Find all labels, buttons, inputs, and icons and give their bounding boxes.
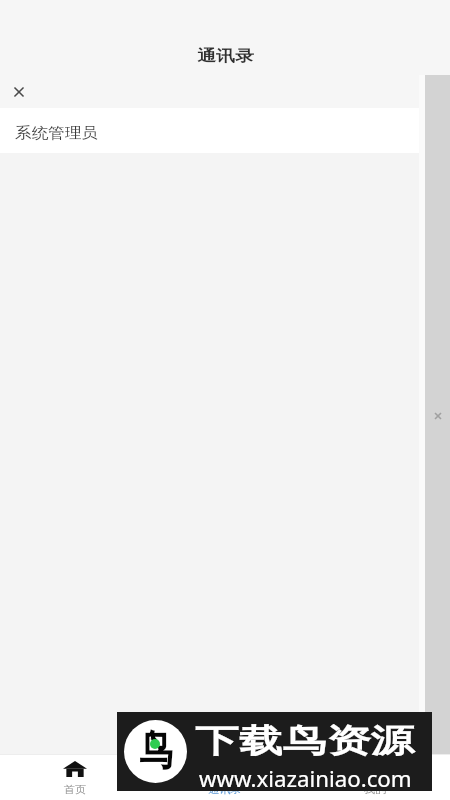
button[interactable]: Close: [6, 79, 31, 104]
staticText: 通讯录: [208, 783, 242, 796]
staticText: 系统管理员: [15, 124, 98, 142]
button[interactable]: Close side panel: [428, 406, 448, 426]
button[interactable]: 系统管理员: [0, 108, 450, 153]
staticText: 首页: [64, 783, 86, 796]
staticText: 下载鸟资源: [195, 721, 414, 762]
staticText: 通讯录: [197, 47, 254, 66]
staticText: 鸟: [140, 725, 172, 778]
staticText: 我的: [364, 783, 386, 796]
button[interactable]: 首页: [0, 754, 150, 800]
button[interactable]: 我的: [300, 754, 450, 800]
staticText: www.xiazainiao.com: [199, 765, 412, 794]
button[interactable]: 通讯录: [150, 754, 300, 800]
